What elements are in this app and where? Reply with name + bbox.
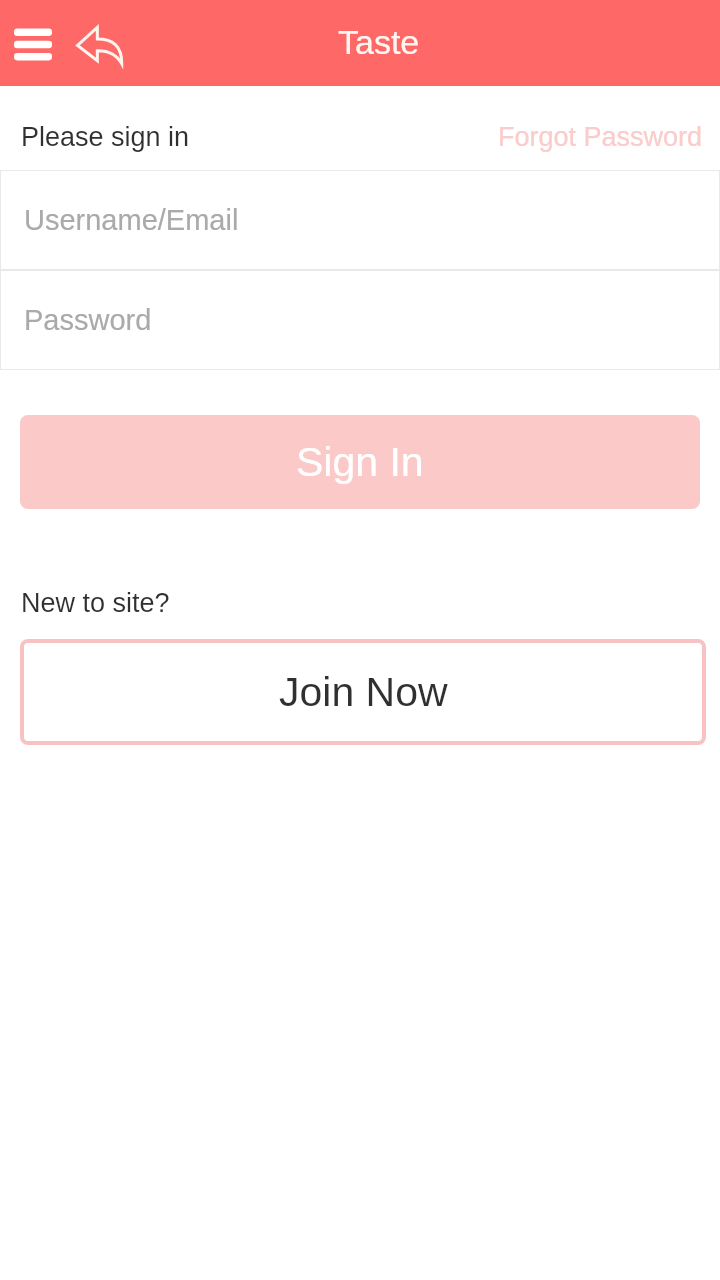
staticText: Sign In — [296, 439, 424, 485]
staticText: New to site? — [21, 588, 170, 618]
button[interactable]: Password — [0, 270, 720, 370]
button[interactable]: Join Now — [20, 639, 706, 745]
staticText: Forgot Password — [498, 122, 703, 152]
staticText: Username/Email — [24, 204, 239, 236]
button[interactable]: Username/Email — [0, 170, 720, 270]
button[interactable]: Open navigation menu — [14, 28, 52, 61]
button[interactable]: Forgot Password — [498, 122, 720, 152]
staticText: Taste — [338, 23, 420, 61]
staticText: Join Now — [279, 669, 448, 715]
staticText: Please sign in — [21, 122, 190, 152]
staticText: Password — [24, 304, 152, 336]
button[interactable]: Sign In — [20, 415, 700, 509]
button[interactable]: Back — [77, 27, 122, 64]
